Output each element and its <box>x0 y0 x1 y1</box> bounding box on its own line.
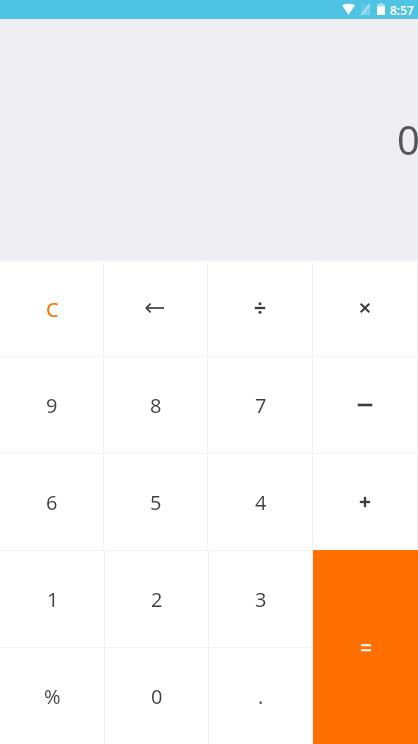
button[interactable]: Equals <box>313 550 418 744</box>
button[interactable]: % <box>0 647 105 744</box>
staticText: 3 <box>255 586 267 613</box>
staticText: 6 <box>46 489 58 516</box>
staticText: 4 <box>255 489 267 516</box>
button[interactable]: 3 <box>209 550 313 647</box>
staticText: C <box>46 296 59 323</box>
staticText: % <box>44 683 61 710</box>
staticText: 2 <box>151 586 163 613</box>
button[interactable]: 2 <box>105 550 209 647</box>
button[interactable]: 0 <box>105 647 209 744</box>
button[interactable]: Minus <box>313 356 418 453</box>
button[interactable]: 1 <box>0 550 105 647</box>
button[interactable]: Result display, 0 <box>0 0 418 260</box>
staticText: 8:57 <box>390 2 414 18</box>
button[interactable]: Divide <box>208 260 313 356</box>
button[interactable]: Multiply <box>313 260 418 356</box>
staticText: 9 <box>46 392 58 419</box>
button[interactable]: 7 <box>208 356 313 453</box>
staticText: 0 <box>397 112 418 166</box>
staticText: 5 <box>150 489 162 516</box>
other: No mobile signal <box>361 4 370 15</box>
button[interactable]: C <box>0 260 104 356</box>
other: Battery <box>377 3 385 15</box>
button[interactable]: 4 <box>208 453 313 550</box>
other: Wi-Fi connected <box>342 4 355 15</box>
button[interactable]: 8 <box>104 356 208 453</box>
staticText: 0 <box>151 683 163 710</box>
staticText: 7 <box>255 392 267 419</box>
button[interactable]: . <box>209 647 313 744</box>
staticText: 1 <box>47 586 59 613</box>
button[interactable]: 9 <box>0 356 104 453</box>
staticText: . <box>258 683 264 710</box>
button[interactable]: Plus <box>313 453 418 550</box>
staticText: 8 <box>150 392 162 419</box>
button[interactable]: Backspace <box>104 260 208 356</box>
button[interactable]: 6 <box>0 453 104 550</box>
button[interactable]: 5 <box>104 453 208 550</box>
